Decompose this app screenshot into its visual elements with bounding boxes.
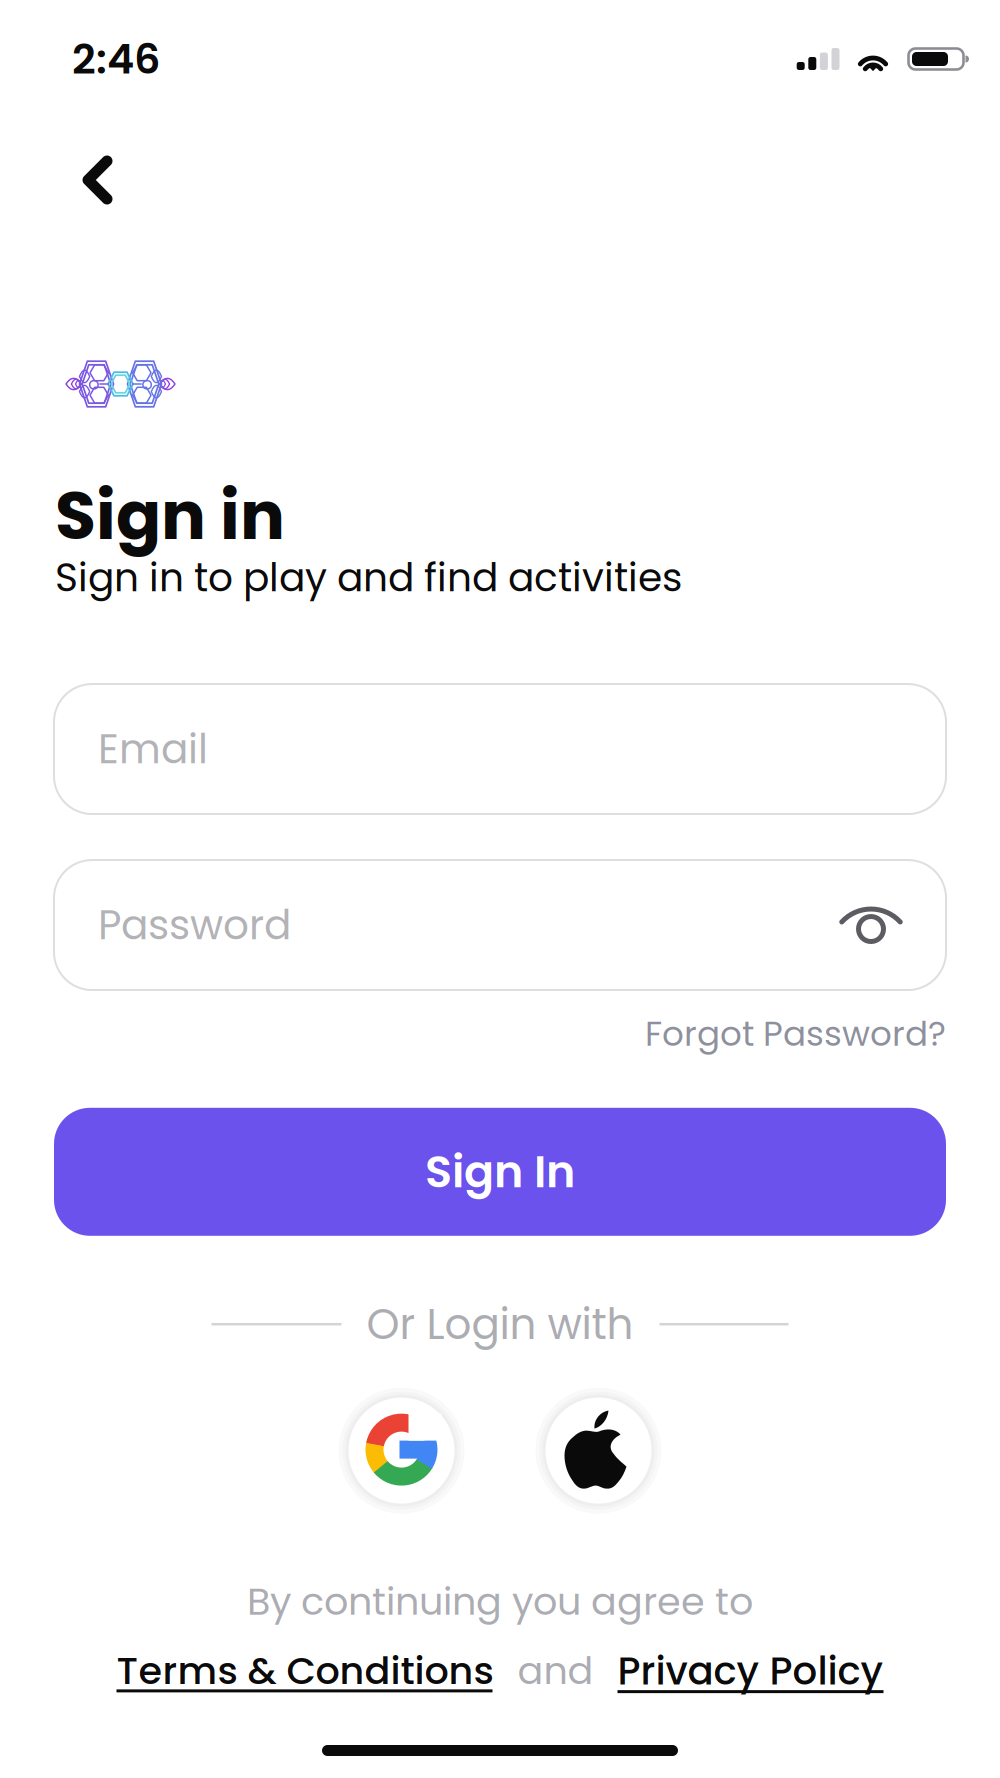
staticText: Forgot Password? (645, 1010, 946, 1058)
staticText: Password (98, 897, 291, 953)
staticText: Email (98, 721, 208, 777)
button[interactable]: Sign In (0, 1108, 1000, 1236)
staticText: Sign In (425, 1141, 575, 1203)
staticText: Or Login with (366, 1295, 633, 1354)
staticText: By continuing you agree to (247, 1575, 753, 1628)
button[interactable]: Sign in with Google (334, 1384, 468, 1518)
button[interactable]: Forgot Password? (645, 998, 1000, 1070)
staticText: Privacy Policy (617, 1644, 883, 1698)
staticText: 2:46 (72, 30, 160, 88)
button[interactable]: Show password (831, 885, 902, 965)
staticText: Sign in (55, 469, 285, 562)
staticText: Terms & Conditions (116, 1644, 493, 1697)
button[interactable]: Sign in with Apple (531, 1384, 665, 1518)
staticText: and (517, 1644, 593, 1697)
button[interactable]: Terms & Conditions (116, 1644, 493, 1697)
button[interactable]: Back (56, 129, 139, 226)
staticText: Sign in to play and find activities (55, 550, 682, 605)
button[interactable]: Privacy Policy (617, 1644, 883, 1698)
